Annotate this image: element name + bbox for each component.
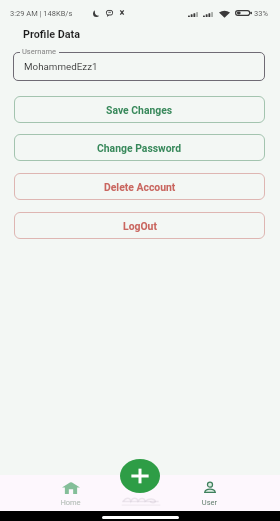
staticText: Username [22, 47, 57, 56]
staticText: Change Password [97, 142, 182, 154]
staticText: 33% [254, 9, 268, 18]
button[interactable]: MohammedEzz1 [13, 52, 265, 81]
button[interactable]: Change Password [14, 134, 265, 161]
button[interactable]: Add [120, 459, 160, 493]
button[interactable]: LogOut [14, 212, 265, 239]
button[interactable]: User [185, 477, 234, 509]
button[interactable]: Save Changes [14, 96, 265, 123]
staticText: Home [46, 498, 95, 507]
staticText: User [185, 498, 234, 507]
staticText: Profile Data [23, 28, 81, 41]
staticText: 3:29 AM | 148KB/s [10, 9, 73, 18]
staticText: LogOut [123, 220, 157, 232]
staticText: MohammedEzz1 [24, 61, 98, 72]
staticText: Delete Account [104, 181, 176, 193]
button[interactable]: Home [46, 477, 95, 509]
staticText: Save Changes [106, 104, 173, 116]
button[interactable]: Delete Account [14, 173, 265, 200]
